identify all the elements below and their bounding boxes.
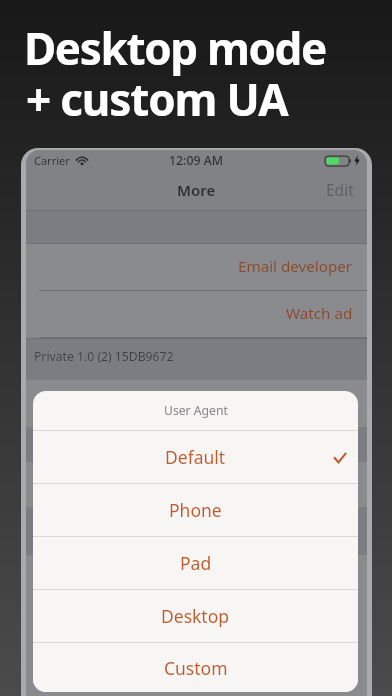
button[interactable]: Custom (33, 643, 358, 692)
staticText: User Agent (164, 402, 228, 419)
staticText: Edit (326, 179, 354, 200)
button[interactable]: Edit (313, 171, 367, 208)
staticText: Carrier (34, 153, 70, 168)
button[interactable]: Desktop (33, 590, 358, 642)
staticText: Email developer (238, 256, 353, 277)
staticText: Desktop mode (24, 18, 326, 78)
staticText: Default (165, 445, 226, 469)
staticText: Pad (180, 551, 212, 575)
button[interactable]: Watch ad (26, 291, 367, 338)
staticText: Private 1.0 (2) 15DB9672 (34, 348, 174, 365)
staticText: Desktop (161, 604, 230, 628)
button[interactable]: Phone (33, 484, 358, 536)
staticText: 12:09 AM (169, 152, 224, 169)
staticText: Custom (164, 656, 228, 680)
button[interactable]: Email developer (26, 244, 367, 291)
button[interactable]: Pad (33, 537, 358, 589)
staticText: More (177, 180, 216, 200)
button[interactable]: Default (33, 431, 358, 483)
staticText: Phone (169, 498, 222, 522)
staticText: + custom UA (26, 69, 288, 129)
staticText: Watch ad (286, 303, 353, 324)
